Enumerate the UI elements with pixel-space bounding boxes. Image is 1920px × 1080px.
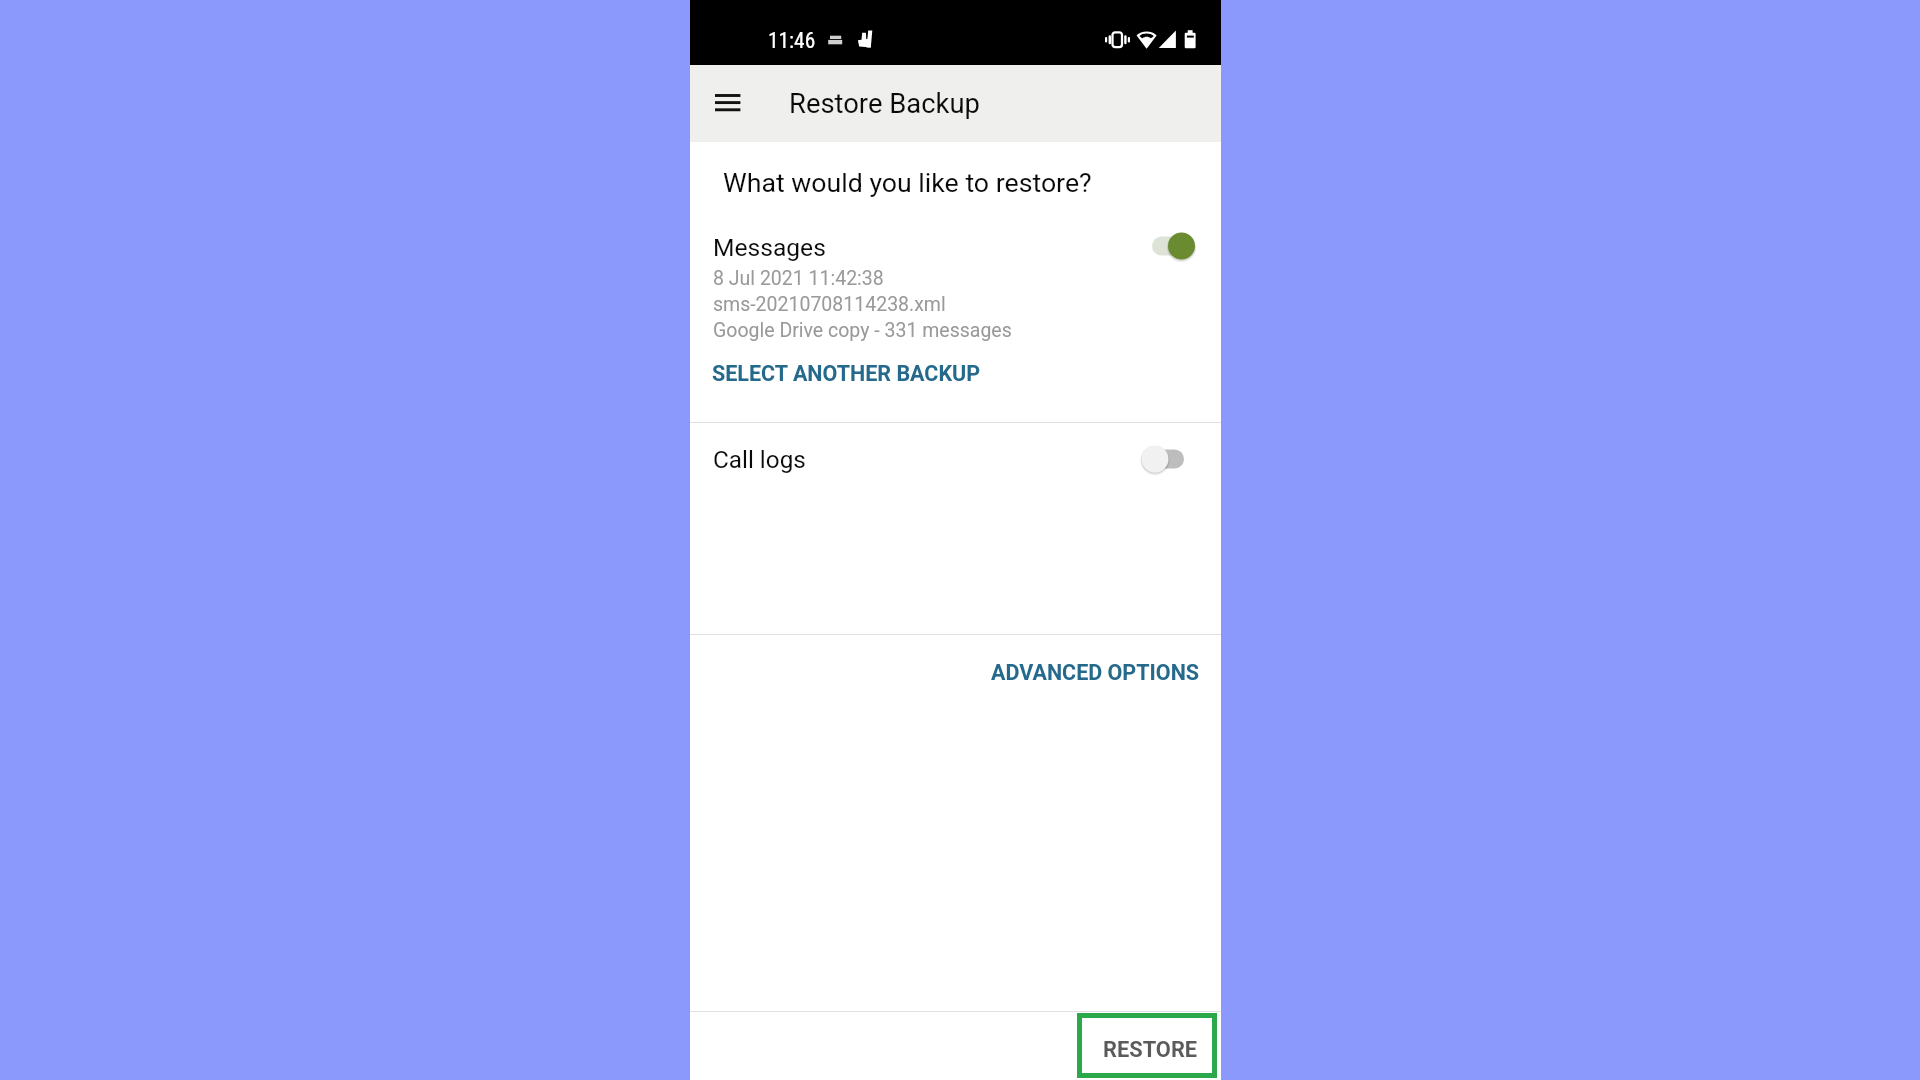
- staticText: What would you like to restore?: [723, 167, 1092, 198]
- staticText: SELECT ANOTHER BACKUP: [712, 361, 981, 386]
- staticText: sms-20210708114238.xml: [713, 293, 946, 316]
- staticText: Messages: [713, 233, 826, 262]
- button[interactable]: ADVANCED OPTIONS: [981, 659, 1207, 699]
- button[interactable]: RESTORE: [1077, 1013, 1217, 1078]
- staticText: 8 Jul 2021 11:42:38: [713, 267, 884, 290]
- staticText: RESTORE: [1103, 1037, 1198, 1063]
- button[interactable]: Open navigation drawer: [698, 74, 757, 133]
- button[interactable]: Restore call logs, off: [690, 433, 1221, 489]
- staticText: Google Drive copy - 331 messages: [713, 319, 1012, 342]
- button[interactable]: SELECT ANOTHER BACKUP: [702, 359, 992, 399]
- staticText: 11:46: [768, 28, 816, 53]
- staticText: Call logs: [713, 445, 806, 473]
- staticText: ADVANCED OPTIONS: [991, 660, 1200, 685]
- button[interactable]: Restore messages, on: [690, 220, 1221, 348]
- staticText: Restore Backup: [789, 88, 980, 120]
